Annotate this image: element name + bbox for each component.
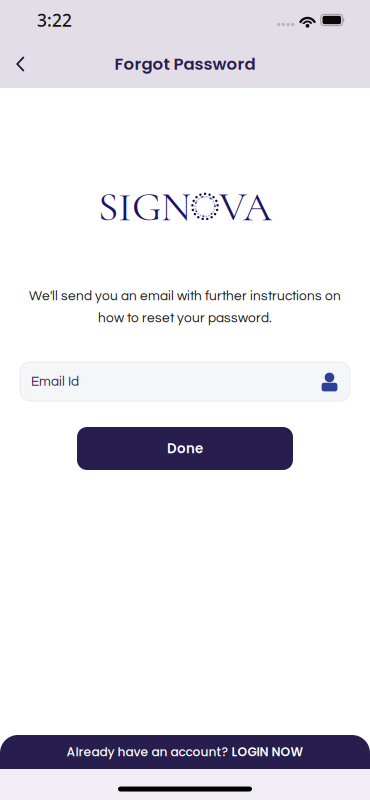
staticText: VA [219,182,272,232]
button[interactable]: Back [0,40,43,88]
staticText: Done [167,439,203,458]
staticText: how to reset your password. [98,311,272,325]
staticText: Forgot Password [114,52,255,75]
staticText: 3:22 [37,8,72,31]
staticText: We'll send you an email with further ins… [29,289,341,303]
staticText: Already have an account? [66,743,231,761]
button[interactable]: Done [77,427,293,470]
staticText: SIGN [98,182,191,232]
staticText: LOGIN NOW [231,743,303,761]
staticText: Email Id [31,374,79,388]
button[interactable]: Already have an account? [0,735,370,769]
